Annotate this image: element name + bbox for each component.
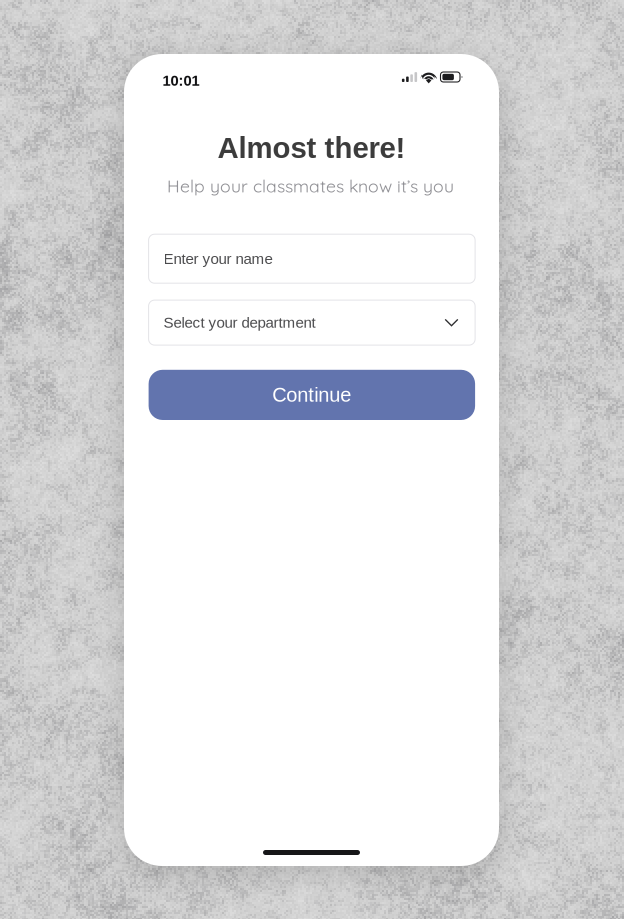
- staticText: Help your classmates know it’s you: [167, 175, 454, 197]
- staticText: Continue: [272, 384, 351, 406]
- staticText: 10:01: [162, 72, 199, 89]
- staticText: Enter your name: [164, 250, 273, 267]
- button[interactable]: Enter your name: [149, 234, 475, 283]
- staticText: Almost there!: [217, 131, 405, 164]
- button[interactable]: Continue: [149, 370, 475, 420]
- button[interactable]: Select your department: [149, 300, 475, 345]
- staticText: Select your department: [164, 314, 316, 331]
